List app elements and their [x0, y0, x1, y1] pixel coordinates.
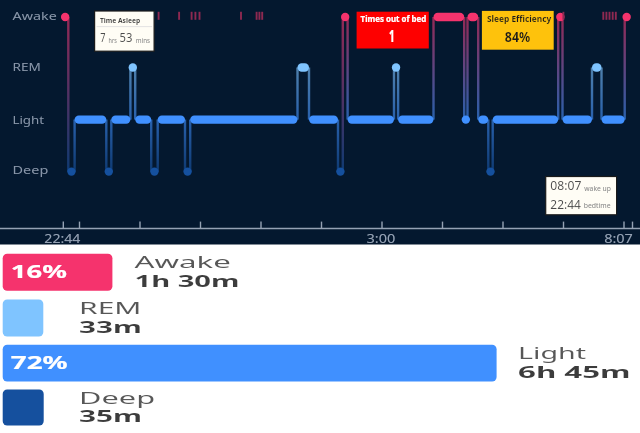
button[interactable]: Sleep stages chart [0, 0, 640, 433]
